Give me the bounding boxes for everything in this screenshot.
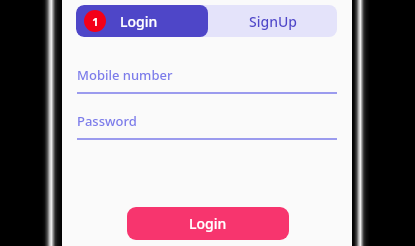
staticText: Password [77,112,137,130]
staticText: Mobile number [77,66,173,84]
staticText: SignUp [249,12,297,31]
button[interactable]: 1 [76,5,208,37]
staticText: 1 [92,14,99,29]
staticText: Login [189,214,227,233]
staticText: Login [120,12,158,31]
button[interactable]: 2 [242,145,415,165]
button[interactable]: SignUp [208,5,337,37]
button[interactable]: Login [127,207,289,240]
